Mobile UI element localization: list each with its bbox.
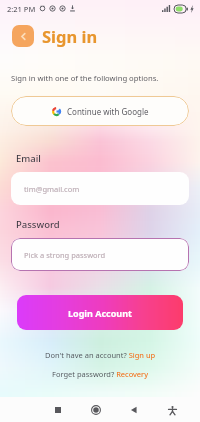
staticText: Continue with Google bbox=[67, 106, 149, 117]
staticText: Forget password? Recovery bbox=[52, 369, 148, 379]
button[interactable]: tim@gmail.com bbox=[11, 172, 189, 205]
button[interactable]: Accessibility bbox=[162, 400, 182, 420]
staticText: Don't have an account? Sign up bbox=[45, 350, 156, 360]
button[interactable]: Home bbox=[86, 400, 106, 420]
button[interactable]: Back bbox=[12, 25, 34, 47]
staticText: Sign in bbox=[42, 25, 98, 47]
staticText: Login Account bbox=[68, 307, 132, 319]
button[interactable]: Forget password? Recovery bbox=[48, 368, 152, 380]
staticText: Password bbox=[16, 218, 60, 231]
staticText: Email bbox=[16, 152, 41, 165]
button[interactable]: Pick a strong password bbox=[11, 238, 189, 271]
staticText: 2:21 PM bbox=[7, 4, 36, 14]
staticText: Sign in with one of the following option… bbox=[11, 73, 159, 83]
button[interactable]: Don't have an account? Sign up bbox=[41, 349, 160, 361]
button[interactable]: Recents bbox=[48, 400, 68, 420]
staticText: Pick a strong password bbox=[24, 250, 106, 260]
button[interactable]: Back bbox=[124, 400, 144, 420]
staticText: tim@gmail.com bbox=[24, 184, 80, 194]
button[interactable]: Login Account bbox=[17, 295, 183, 330]
button[interactable]: Continue with Google bbox=[11, 96, 189, 126]
